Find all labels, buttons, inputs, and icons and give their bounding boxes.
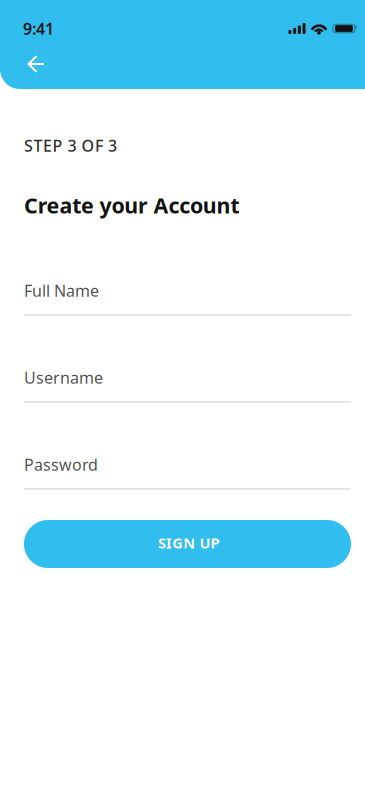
staticText: Full Name [24, 280, 99, 301]
staticText: Password [24, 454, 98, 475]
button[interactable]: SIGN UP [24, 520, 351, 568]
staticText: SIGN UP [158, 533, 220, 552]
button[interactable]: Username [24, 367, 351, 400]
button[interactable]: Password [24, 454, 351, 487]
button[interactable]: Full Name [24, 280, 351, 313]
staticText: STEP 3 OF 3 [24, 135, 117, 156]
staticText: Username [24, 367, 103, 388]
button[interactable]: Back [27, 46, 67, 82]
staticText: Create your Account [24, 191, 239, 219]
staticText: 9:41 [23, 18, 54, 39]
